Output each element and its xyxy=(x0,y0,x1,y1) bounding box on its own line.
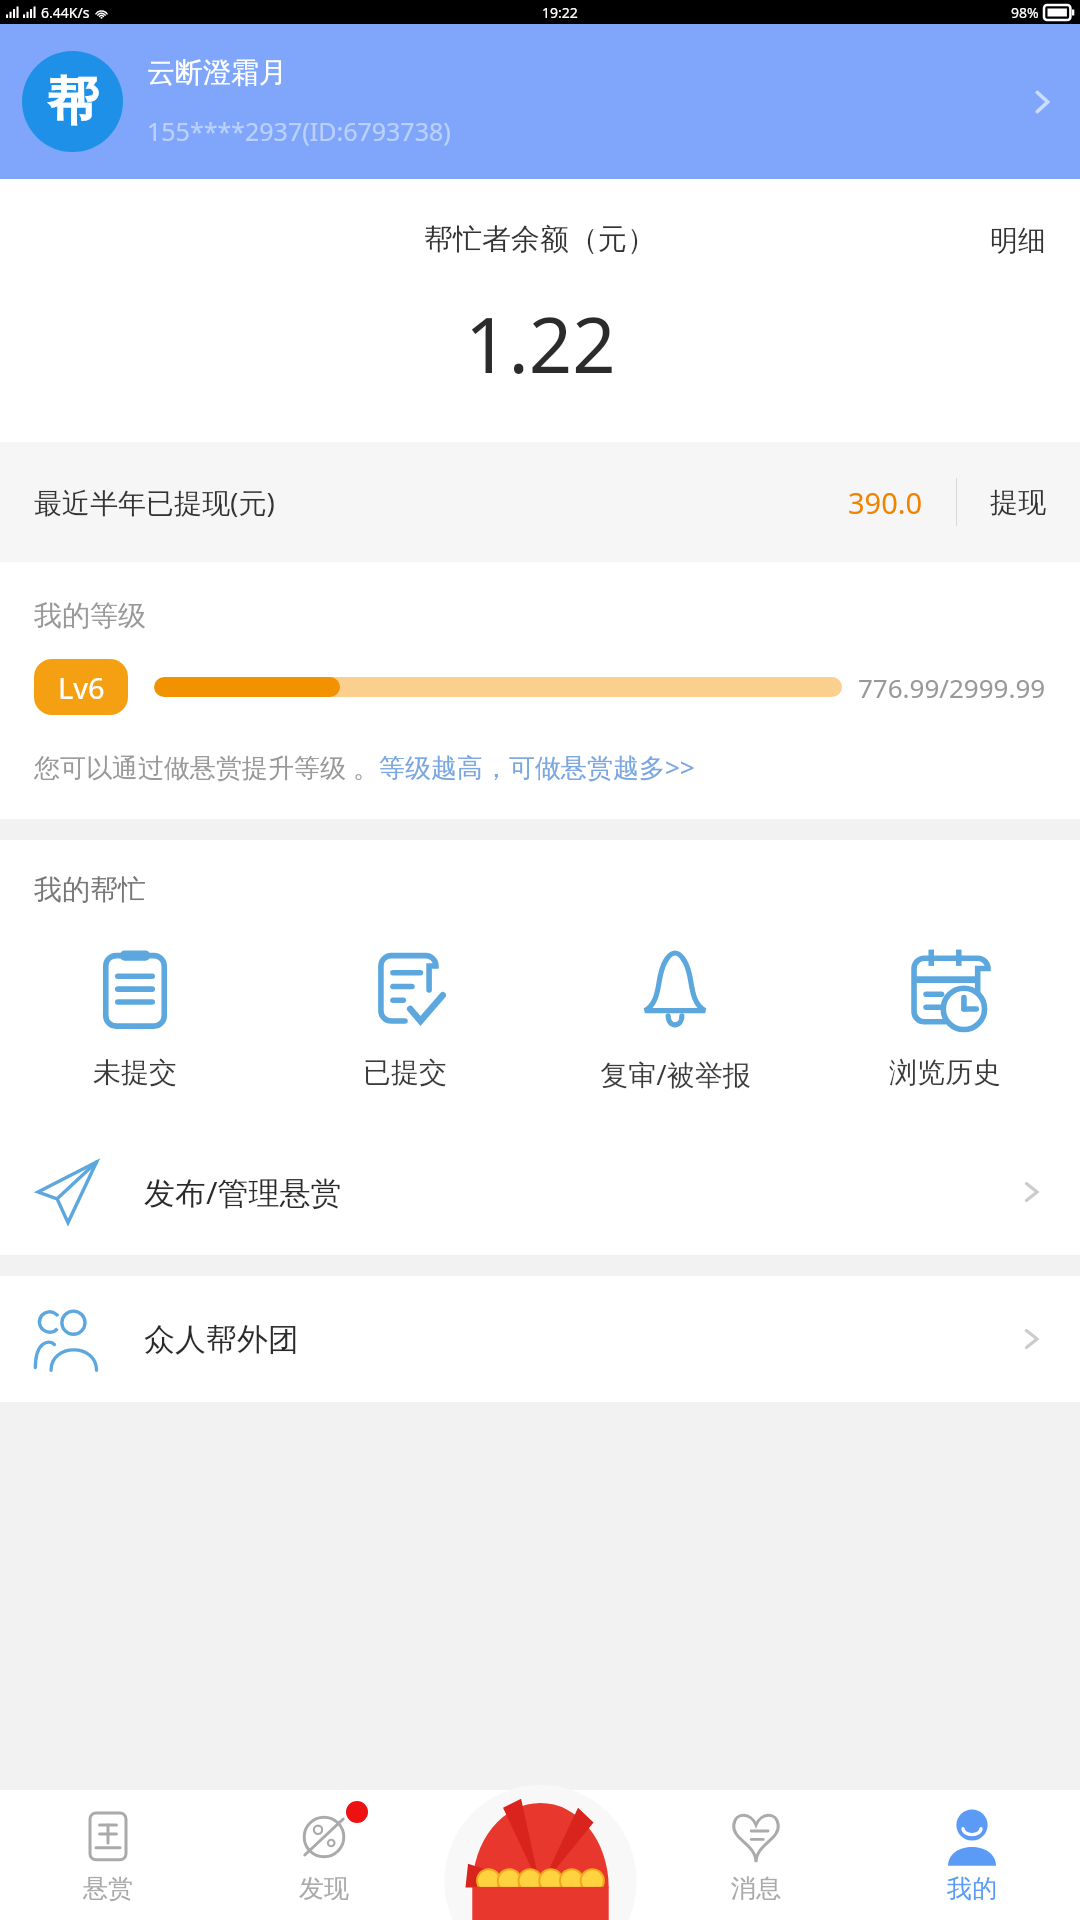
staticText: 最近半年已提现(元) xyxy=(34,483,275,521)
staticText: 浏览历史 xyxy=(889,1055,1001,1090)
button[interactable]: 发现 xyxy=(216,1790,432,1920)
button[interactable]: 师徒 xyxy=(463,1790,618,1920)
button[interactable]: 发布/管理悬赏 xyxy=(0,1129,1080,1255)
staticText: 众人帮外团 xyxy=(144,1320,299,1359)
staticText: 发布/管理悬赏 xyxy=(144,1171,342,1213)
staticText: 我的等级 xyxy=(34,598,146,633)
staticText: 19:22 xyxy=(542,3,578,22)
button[interactable]: 帮 xyxy=(0,24,1080,179)
staticText: 6.44K/s xyxy=(41,3,90,22)
staticText: 390.0 xyxy=(848,483,923,522)
button[interactable]: 明细 xyxy=(990,223,1046,258)
staticText: 消息 xyxy=(731,1873,781,1904)
button[interactable]: 悬赏 xyxy=(0,1790,216,1920)
staticText: 我的 xyxy=(947,1873,997,1904)
staticText: 98% xyxy=(1011,3,1039,22)
button[interactable]: 众人帮外团 xyxy=(0,1276,1080,1402)
staticText: 已提交 xyxy=(363,1055,447,1090)
button[interactable]: 已提交 xyxy=(270,943,540,1094)
staticText: 悬赏 xyxy=(83,1873,133,1904)
staticText: 776.99/2999.99 xyxy=(858,670,1046,705)
staticText: 帮 xyxy=(47,69,99,135)
staticText: 帮忙者余额（元） xyxy=(424,221,656,258)
button[interactable]: 浏览历史 xyxy=(810,943,1080,1094)
button[interactable]: 等级越高，可做悬赏越多>> xyxy=(379,749,695,785)
button[interactable]: Lv6 xyxy=(34,659,128,715)
button[interactable]: 最近半年已提现(元) xyxy=(0,442,1080,562)
staticText: 未提交 xyxy=(93,1055,177,1090)
staticText: 提现 xyxy=(990,485,1046,520)
button[interactable]: 复审/被举报 xyxy=(540,943,810,1097)
staticText: 我的帮忙 xyxy=(34,872,146,907)
staticText: 云断澄霜月 xyxy=(147,55,287,90)
staticText: 发现 xyxy=(299,1873,349,1904)
button[interactable]: 我的 xyxy=(864,1790,1080,1920)
staticText: 1.22 xyxy=(465,292,616,396)
staticText: 155****2937(ID:6793738) xyxy=(147,114,451,148)
button[interactable]: 消息 xyxy=(648,1790,864,1920)
button[interactable]: 未提交 xyxy=(0,943,270,1094)
staticText: Lv6 xyxy=(58,668,105,707)
other: 个人资料 xyxy=(1026,86,1058,118)
staticText: 复审/被举报 xyxy=(600,1055,751,1093)
staticText: 您可以通过做悬赏提升等级 。 xyxy=(34,749,379,785)
